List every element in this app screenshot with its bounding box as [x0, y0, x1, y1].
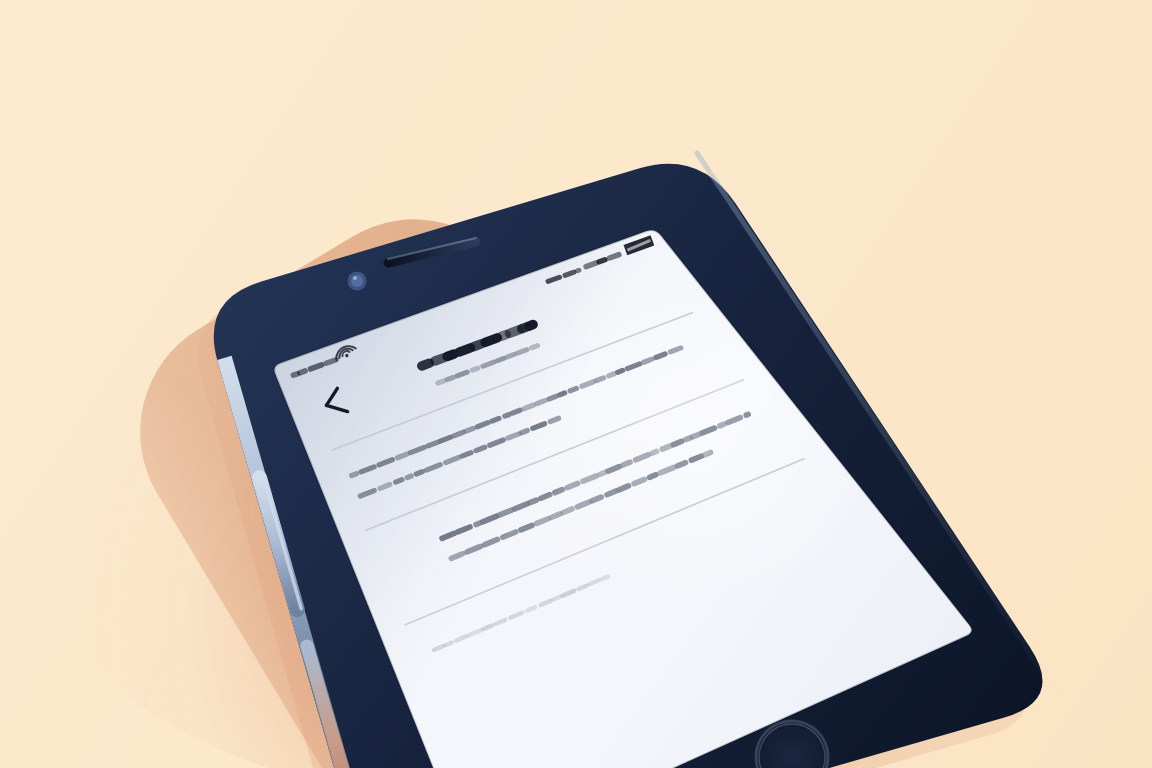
button[interactable]: Home: [760, 725, 826, 768]
button[interactable]: [300, 420, 940, 516]
button[interactable]: Back: [290, 370, 352, 424]
button[interactable]: [360, 520, 990, 630]
button[interactable]: [440, 345, 670, 403]
